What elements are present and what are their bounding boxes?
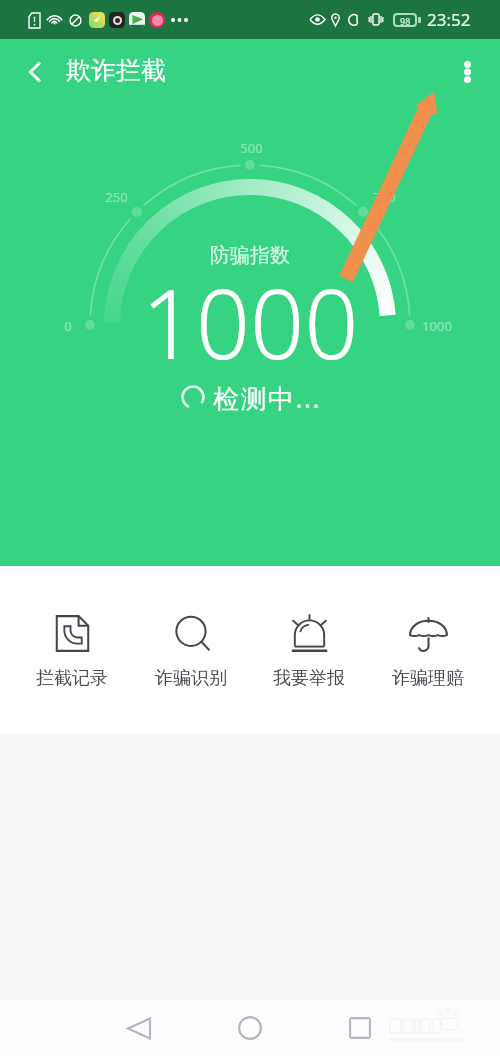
button[interactable]: Recent apps: [335, 1003, 385, 1053]
button[interactable]: More options: [444, 49, 490, 95]
button[interactable]: 诈骗理赔: [369, 566, 487, 686]
button[interactable]: Home: [225, 1003, 275, 1053]
staticText: 98: [400, 15, 411, 25]
staticText: 诈骗识别: [155, 667, 227, 686]
staticText: 1000: [0, 257, 500, 386]
button[interactable]: 我要举报: [250, 566, 368, 686]
staticText: 750: [373, 188, 396, 206]
staticText: 检测中...: [213, 380, 321, 416]
staticText: 250: [105, 188, 128, 206]
staticText: 防骗指数: [0, 243, 500, 268]
staticText: 欺诈拦截: [66, 55, 166, 86]
staticText: 1000: [422, 317, 452, 335]
button[interactable]: Back: [12, 49, 58, 95]
staticText: 0: [64, 317, 72, 335]
staticText: 拦截记录: [36, 667, 108, 686]
button[interactable]: Back: [114, 1003, 164, 1053]
staticText: 我要举报: [273, 667, 345, 686]
staticText: 500: [240, 139, 263, 157]
staticText: 23:52: [427, 8, 471, 31]
button[interactable]: 拦截记录: [13, 566, 131, 686]
button[interactable]: 诈骗识别: [132, 566, 250, 686]
staticText: 诈骗理赔: [392, 667, 464, 686]
